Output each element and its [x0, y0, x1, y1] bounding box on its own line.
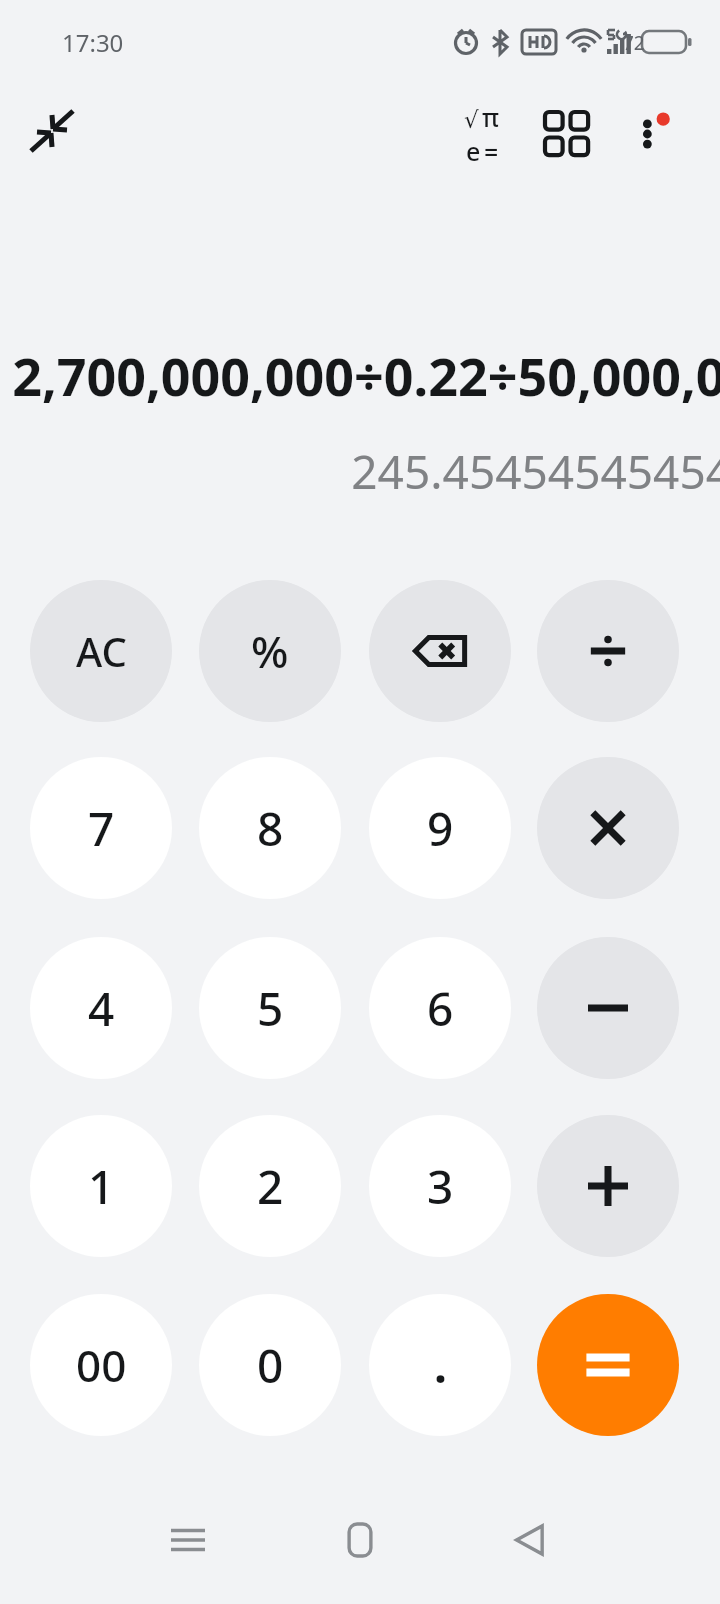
button[interactable]: More options [608, 92, 692, 176]
button[interactable]: 6 [369, 937, 511, 1079]
button[interactable]: 1 [30, 1115, 172, 1257]
staticText: π [482, 100, 500, 134]
button[interactable]: Recents [140, 1492, 236, 1588]
button[interactable]: Back [482, 1492, 578, 1588]
staticText: = [484, 134, 499, 168]
button[interactable]: % [199, 580, 341, 722]
staticText: 0 [257, 1334, 284, 1397]
staticText: 00 [76, 1335, 127, 1395]
staticText: 7 [88, 797, 115, 860]
button[interactable]: Minus [537, 937, 679, 1079]
button[interactable]: 0 [199, 1294, 341, 1436]
staticText: 5 [257, 977, 284, 1040]
button[interactable]: . [369, 1294, 511, 1436]
staticText: 72 [623, 30, 645, 56]
staticText: 8 [257, 797, 284, 860]
button[interactable]: Equals [537, 1294, 679, 1436]
button[interactable]: 9 [369, 757, 511, 899]
button[interactable]: 00 [30, 1294, 172, 1436]
staticText: 17:30 [62, 26, 124, 59]
staticText: √ [464, 107, 479, 134]
button[interactable]: Scientific mode [440, 92, 524, 176]
button[interactable]: Multiply [537, 757, 679, 899]
staticText: 4 [88, 977, 115, 1040]
button[interactable]: Collapse [12, 90, 92, 170]
button[interactable]: Backspace [369, 580, 511, 722]
staticText: 2,700,000,000÷0.22÷50,000,000 [12, 340, 720, 411]
staticText: 9 [427, 797, 454, 860]
button[interactable]: 5 [199, 937, 341, 1079]
staticText: 6 [427, 977, 454, 1040]
button[interactable]: 3 [369, 1115, 511, 1257]
button[interactable]: 2 [199, 1115, 341, 1257]
button[interactable]: Home [312, 1492, 408, 1588]
button[interactable]: Divide [537, 580, 679, 722]
staticText: % [251, 621, 289, 681]
staticText: 245.45454545454 [351, 440, 720, 503]
staticText: . [434, 1334, 447, 1397]
button[interactable]: 7 [30, 757, 172, 899]
button[interactable]: AC [30, 580, 172, 722]
staticText: 2 [257, 1155, 284, 1218]
staticText: AC [76, 624, 127, 678]
staticText: 1 [88, 1155, 115, 1218]
button[interactable]: 8 [199, 757, 341, 899]
button[interactable]: Plus [537, 1115, 679, 1257]
staticText: e [466, 134, 481, 168]
button[interactable]: Unit converter [525, 92, 609, 176]
button[interactable]: 4 [30, 937, 172, 1079]
staticText: 3 [427, 1155, 454, 1218]
